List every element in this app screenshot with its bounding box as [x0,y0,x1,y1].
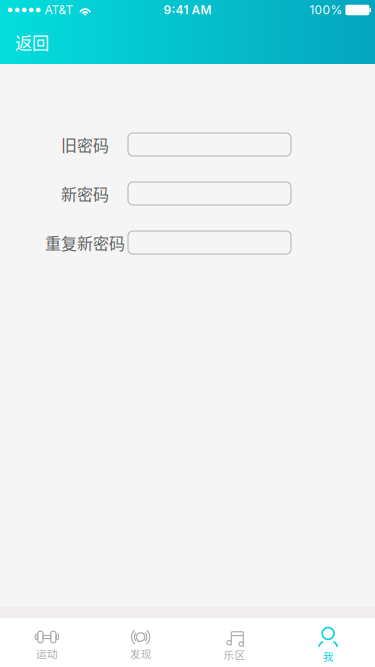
staticText: 我 [323,648,334,664]
staticText: 乐区 [223,647,245,662]
staticText: 发现 [130,646,152,661]
staticText: 运动 [36,646,58,661]
button[interactable] [128,133,291,156]
button[interactable]: 我 [281,618,375,667]
button[interactable] [128,182,291,205]
button[interactable]: 运动 [0,618,94,667]
staticText: AT&T [45,3,74,17]
button[interactable]: 返回 [0,20,96,64]
staticText: 新密码 [61,182,109,205]
staticText: 9:41 AM [163,3,211,17]
staticText: 旧密码 [61,133,109,156]
staticText: 重复新密码 [45,231,125,254]
button[interactable]: 乐区 [187,618,281,667]
button[interactable] [128,231,291,254]
staticText: 返回 [15,29,49,55]
staticText: 100% [309,3,342,17]
button[interactable]: 发现 [94,618,188,667]
